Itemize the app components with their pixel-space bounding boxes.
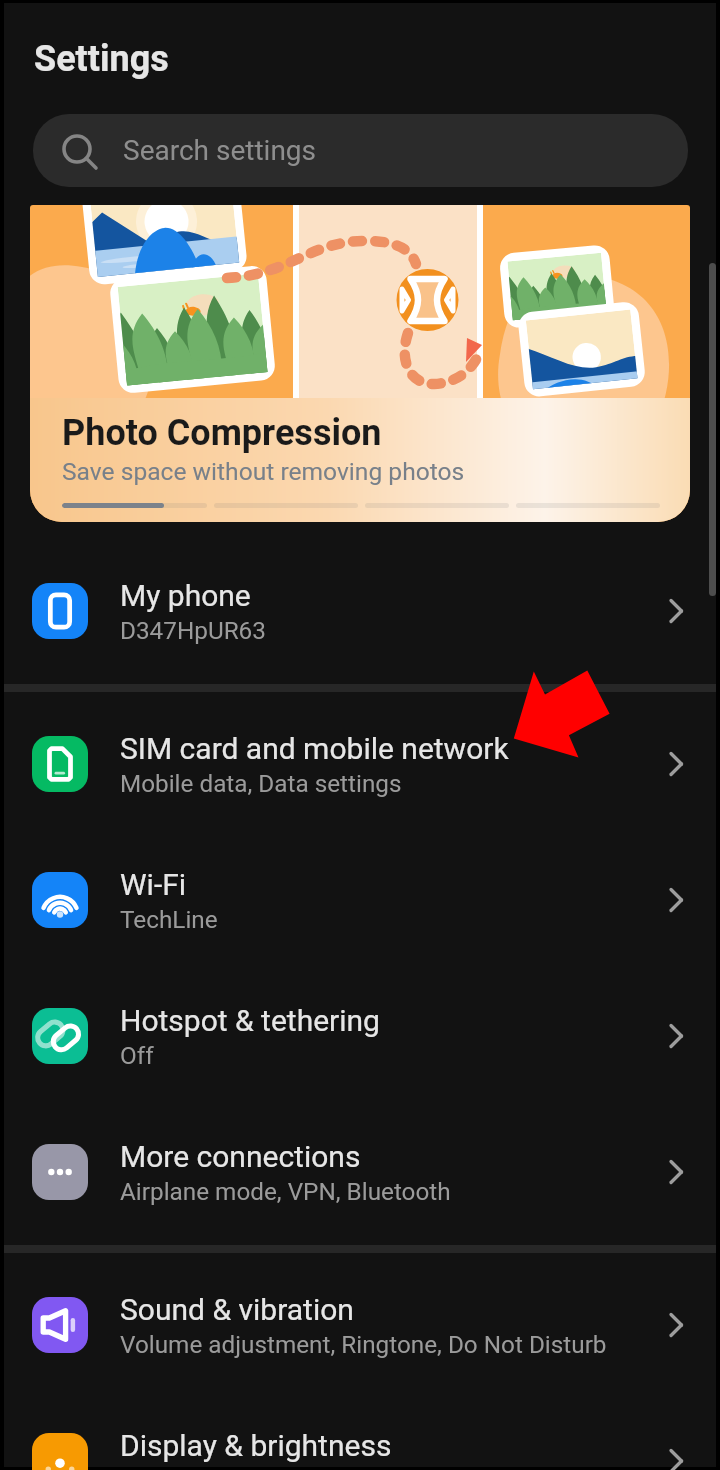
staticText: Settings [34, 38, 169, 80]
button[interactable] [62, 503, 207, 508]
button[interactable]: My phone [4, 543, 716, 679]
staticText: Hotspot & tethering [120, 1003, 380, 1038]
button[interactable]: Sound & vibration [4, 1257, 716, 1393]
staticText: Off [120, 1041, 154, 1069]
staticText: Save space without removing photos [62, 457, 465, 486]
staticText: Photo Compression [62, 412, 382, 454]
staticText: Mobile data, Data settings [120, 769, 402, 797]
button[interactable] [516, 503, 660, 508]
button[interactable] [365, 503, 509, 508]
staticText: Dark mode, Font [120, 1466, 297, 1470]
button[interactable]: SIM card and mobile network [4, 696, 716, 832]
staticText: SIM card and mobile network [120, 731, 509, 766]
staticText: TechLine [120, 905, 218, 933]
button[interactable]: More connections [4, 1104, 716, 1240]
button[interactable]: Display & brightness [4, 1393, 716, 1470]
staticText: Display & brightness [120, 1428, 392, 1463]
button[interactable] [214, 503, 358, 508]
staticText: Volume adjustment, Ringtone, Do Not Dist… [120, 1330, 607, 1358]
staticText: More connections [120, 1139, 361, 1174]
staticText: Wi-Fi [120, 867, 187, 902]
button[interactable]: Wi-Fi [4, 832, 716, 968]
button[interactable]: Search settings [33, 114, 688, 187]
staticText: Search settings [123, 134, 317, 167]
staticText: Sound & vibration [120, 1292, 354, 1327]
staticText: D347HpUR63 [120, 616, 266, 644]
staticText: Airplane mode, VPN, Bluetooth [120, 1177, 451, 1205]
staticText: My phone [120, 578, 251, 613]
button[interactable]: Hotspot & tethering [4, 968, 716, 1104]
button[interactable]: Photo Compression [30, 205, 690, 522]
